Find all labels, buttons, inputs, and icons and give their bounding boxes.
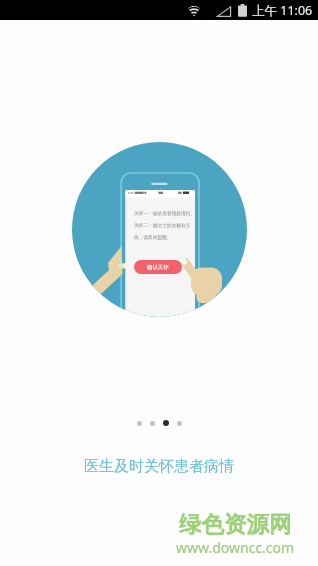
staticText: www.downcc.com [176,538,295,557]
button[interactable]: 确认关怀 [134,260,182,274]
staticText: 高，请及时提醒。 [134,234,172,240]
other: Battery [238,4,247,17]
other: Wifi [188,4,200,17]
staticText: 关怀一：确诊患者错新用药。 [134,210,195,216]
button[interactable]: Page 4 [177,421,182,426]
staticText: 关怀二：糖女士的血糖有点 [134,222,191,228]
staticText: 绿色资源网 [179,510,292,538]
button[interactable]: Page 1 [137,421,142,426]
staticText: 上午 11:06 [252,2,313,19]
staticText: 医生及时关怀患者病情 [84,457,234,476]
staticText: 确认关怀 [147,264,169,271]
button[interactable]: Page 2 [150,421,155,426]
button[interactable]: Page 3 [163,420,169,426]
other: Signal strength [217,4,231,17]
